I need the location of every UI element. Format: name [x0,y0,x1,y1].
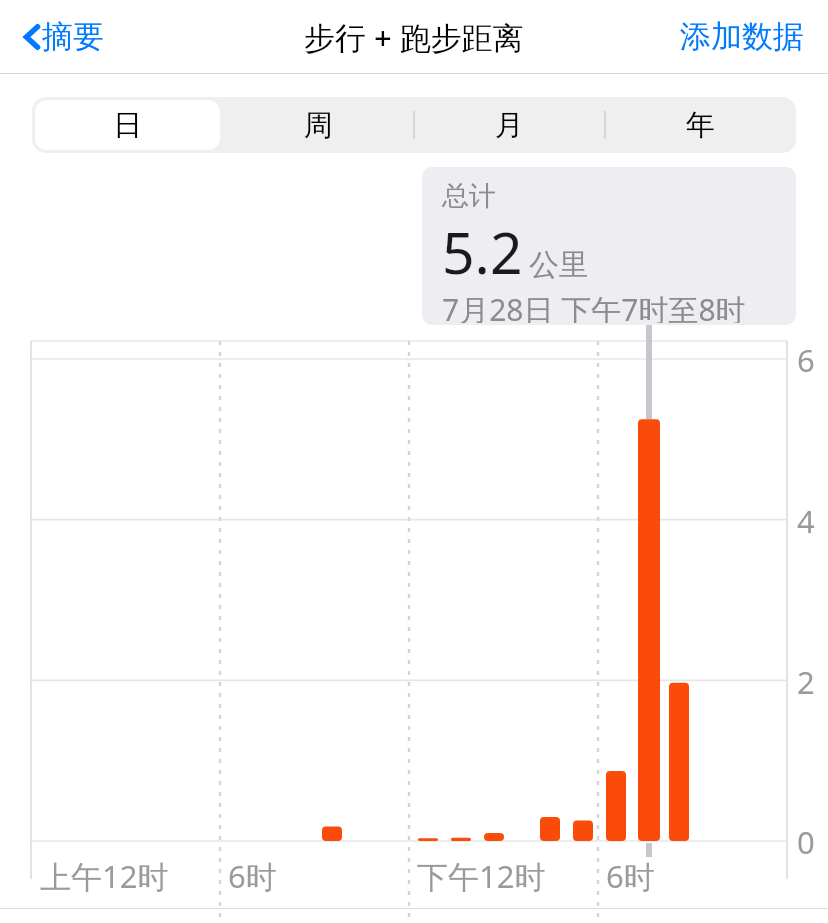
staticText: 步行 + 跑步距离 [304,16,524,58]
staticText: 5.2 [442,213,523,291]
button[interactable]: 摘要 [18,11,108,62]
staticText: 6时 [228,855,277,897]
staticText: 7月28日 下午7时至8时 [442,289,746,323]
button[interactable]: 周 [223,97,414,153]
staticText: 4 [797,500,815,542]
staticText: 周 [304,107,333,144]
button[interactable]: 总计 [422,167,796,325]
button[interactable]: 日 [32,97,223,153]
staticText: 月 [495,107,524,144]
staticText: 6 [797,339,815,381]
staticText: 公里 [529,246,589,284]
button[interactable]: 添加数据 [676,11,808,62]
staticText: 2 [797,661,815,703]
staticText: 年 [686,107,715,144]
staticText: 下午12时 [417,855,546,897]
staticText: 日 [113,107,142,144]
button[interactable]: 年 [605,97,796,153]
staticText: 摘要 [42,17,104,56]
staticText: 总计 [442,179,496,213]
button[interactable]: 月 [414,97,605,153]
staticText: 添加数据 [680,17,804,56]
staticText: 上午12时 [40,855,169,897]
staticText: 0 [797,821,815,863]
staticText: 6时 [606,855,655,897]
